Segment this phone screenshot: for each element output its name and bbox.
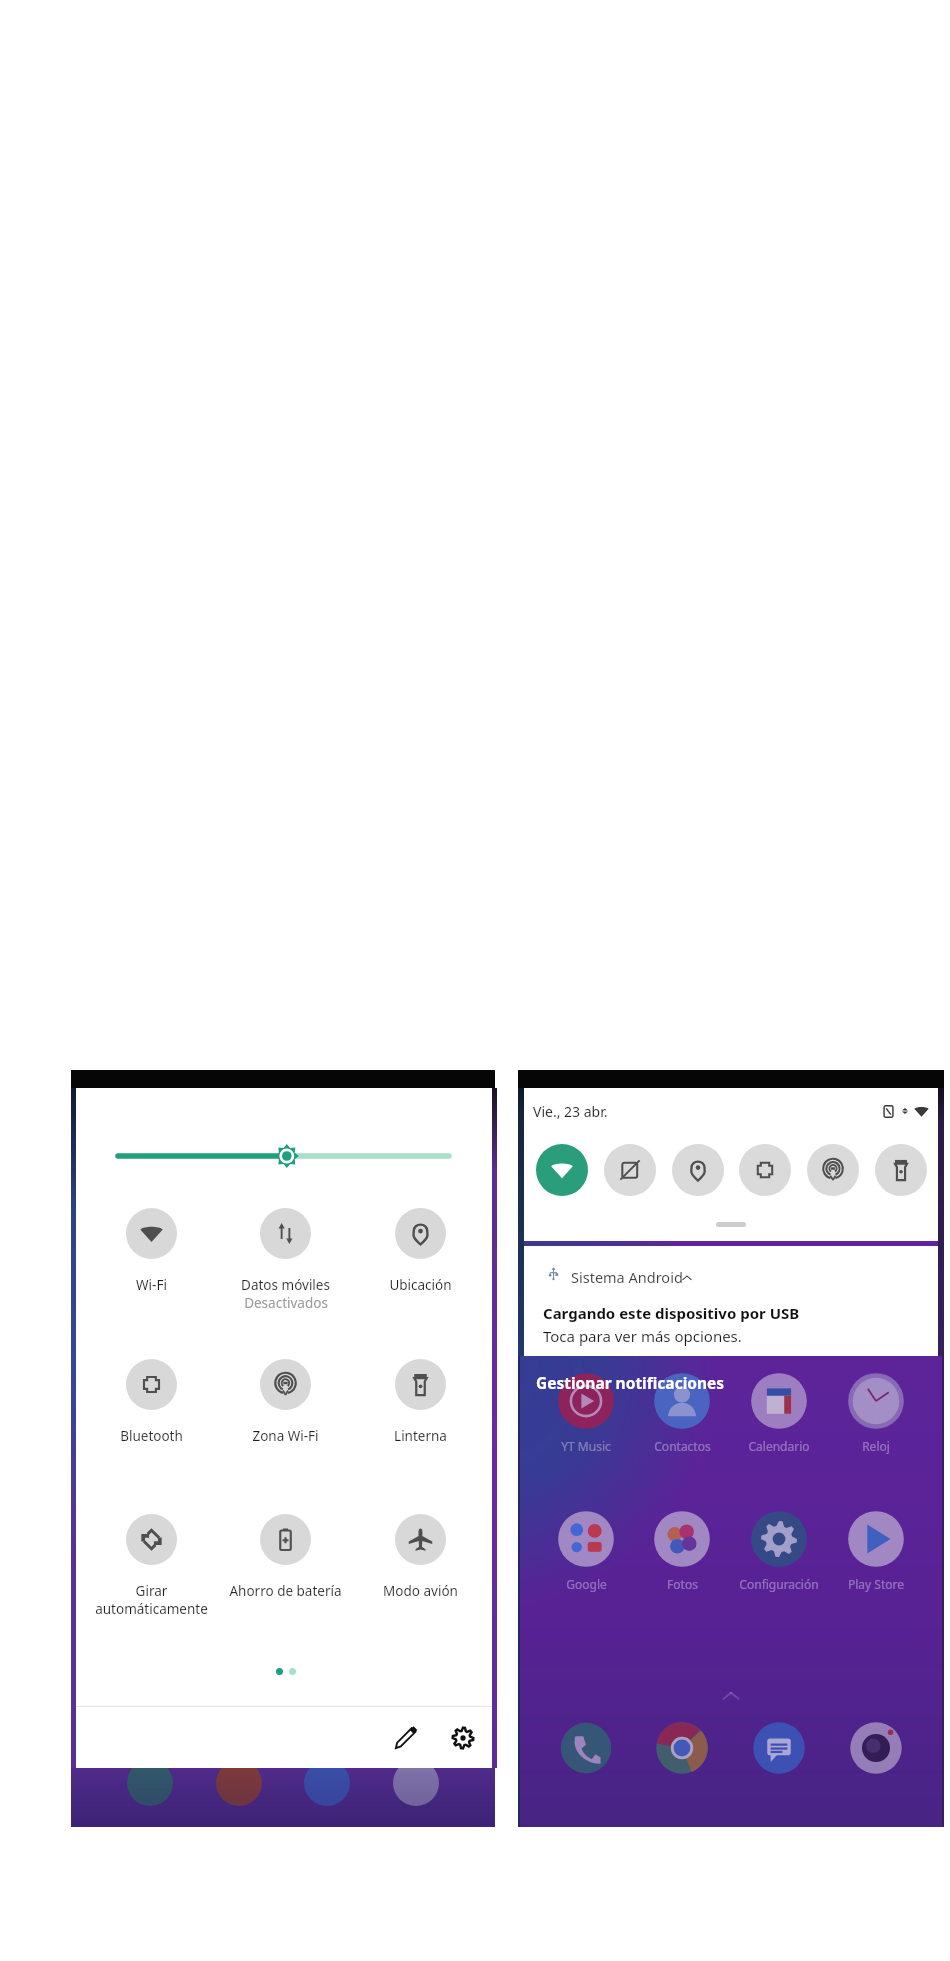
button[interactable]: Wi-Fi: [84, 1208, 218, 1294]
button[interactable]: Mensajes: [751, 1720, 807, 1776]
staticText: Vie., 23 abr.: [533, 1102, 608, 1121]
button[interactable]: Editar: [385, 1717, 427, 1759]
staticText: Desactivados: [244, 1294, 328, 1312]
staticText: Gestionar notificaciones: [536, 1372, 725, 1393]
staticText: Google: [566, 1576, 607, 1592]
staticText: Ahorro de batería: [229, 1582, 342, 1600]
staticText: Play Store: [848, 1576, 904, 1592]
staticText: Reloj: [862, 1438, 890, 1454]
button[interactable]: Ubicación: [672, 1144, 724, 1196]
button[interactable]: Calendario: [731, 1372, 827, 1454]
staticText: Datos móviles: [241, 1276, 330, 1294]
button[interactable]: Teléfono: [558, 1720, 614, 1776]
button[interactable]: Ahorro de batería: [218, 1514, 352, 1600]
staticText: YT Music: [561, 1438, 611, 1454]
button[interactable]: Ubicación: [353, 1208, 487, 1294]
staticText: Cargando este dispositivo por USB: [543, 1303, 800, 1323]
button[interactable]: Zona Wi-Fi: [218, 1359, 352, 1445]
button[interactable]: Datos móviles: [218, 1208, 352, 1312]
staticText: Linterna: [394, 1427, 447, 1445]
button[interactable]: Chrome: [654, 1720, 710, 1776]
staticText: Wi-Fi: [136, 1276, 167, 1294]
button[interactable]: Modo avión: [353, 1514, 487, 1600]
button[interactable]: Cámara: [848, 1720, 904, 1776]
staticText: Contactos: [654, 1438, 711, 1454]
button[interactable]: Configuración: [442, 1717, 484, 1759]
staticText: Zona Wi-Fi: [252, 1427, 319, 1445]
button[interactable]: Bluetooth: [84, 1359, 218, 1445]
button[interactable]: Linterna: [875, 1144, 927, 1196]
staticText: Modo avión: [383, 1582, 458, 1600]
button[interactable]: Fotos: [634, 1510, 730, 1592]
staticText: Bluetooth: [120, 1427, 183, 1445]
button[interactable]: Zona Wi-Fi: [807, 1144, 859, 1196]
button[interactable]: Girar automáticamente: [84, 1514, 218, 1618]
button[interactable]: Bluetooth: [739, 1144, 791, 1196]
staticText: Ubicación: [389, 1276, 452, 1294]
button[interactable]: Linterna: [353, 1359, 487, 1445]
staticText: Sistema Android: [571, 1267, 683, 1287]
button[interactable]: Play Store: [828, 1510, 924, 1592]
staticText: Calendario: [748, 1438, 810, 1454]
staticText: Girar automáticamente: [95, 1582, 208, 1618]
button[interactable]: Contactos: [634, 1372, 730, 1454]
staticText: Fotos: [667, 1576, 698, 1592]
button[interactable]: No molestar: [604, 1144, 656, 1196]
button[interactable]: YT Music: [538, 1372, 634, 1454]
button[interactable]: Configuración: [731, 1510, 827, 1592]
staticText: Toca para ver más opciones.: [543, 1326, 742, 1346]
button[interactable]: Wi-Fi: [536, 1144, 588, 1196]
button[interactable]: Google: [538, 1510, 634, 1592]
staticText: Configuración: [739, 1576, 819, 1592]
button[interactable]: Reloj: [828, 1372, 924, 1454]
